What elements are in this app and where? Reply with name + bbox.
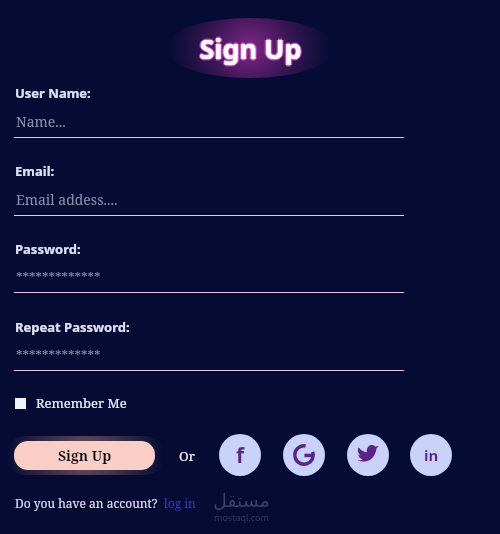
button[interactable]: Sign up with Facebook bbox=[219, 434, 261, 476]
staticText: Password: bbox=[15, 240, 81, 258]
staticText: Repeat Password: bbox=[15, 318, 130, 336]
staticText: Name... bbox=[16, 112, 66, 131]
staticText: in bbox=[424, 445, 439, 465]
staticText: Sign Up bbox=[201, 30, 304, 67]
button[interactable]: Sign up with LinkedIn bbox=[410, 434, 452, 476]
staticText: Sign Up bbox=[200, 30, 303, 67]
staticText: Sign Up bbox=[199, 30, 302, 67]
staticText: Email addess.... bbox=[16, 190, 118, 209]
staticText: f bbox=[236, 441, 245, 470]
button[interactable]: ************* bbox=[14, 268, 404, 293]
button[interactable]: ************* bbox=[14, 346, 404, 371]
button[interactable]: Remember Me bbox=[14, 392, 128, 414]
staticText: Do you have an account? bbox=[15, 495, 158, 511]
button[interactable]: Name... bbox=[14, 112, 404, 138]
staticText: Sign Up bbox=[199, 31, 302, 68]
button[interactable]: Email addess.... bbox=[14, 190, 404, 216]
button[interactable]: Sign up with Google bbox=[283, 434, 325, 476]
staticText: Sign Up bbox=[199, 28, 302, 65]
staticText: Sign Up bbox=[197, 30, 300, 67]
button[interactable]: log in bbox=[163, 493, 197, 513]
staticText: Email: bbox=[15, 162, 55, 180]
staticText: Sign Up bbox=[58, 446, 112, 465]
staticText: ************* bbox=[16, 268, 101, 286]
staticText: Remember Me bbox=[36, 394, 127, 412]
staticText: Or bbox=[179, 447, 195, 465]
staticText: User Name: bbox=[15, 84, 91, 102]
staticText: Sign Up bbox=[198, 30, 301, 67]
staticText: Sign Up bbox=[199, 29, 302, 66]
staticText: Sign Up bbox=[199, 32, 302, 69]
staticText: ************* bbox=[16, 346, 101, 364]
button[interactable]: Sign Up bbox=[14, 441, 155, 470]
staticText: مستقل bbox=[213, 489, 270, 511]
button[interactable]: Sign up with Twitter bbox=[347, 434, 389, 476]
staticText: mostaql.com bbox=[214, 511, 269, 523]
